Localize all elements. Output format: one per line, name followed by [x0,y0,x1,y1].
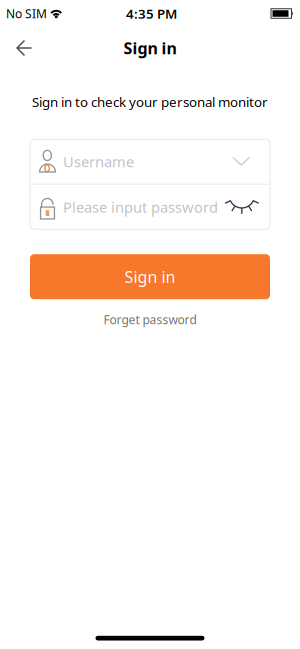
staticText: 4:35 PM [126,5,177,22]
button[interactable]: Show password [228,200,255,214]
button[interactable]: Sign in [30,254,270,299]
staticText: Sign in [124,266,175,287]
staticText: Please input password [63,197,218,217]
staticText: Sign in to check your personal monitor [32,93,268,111]
staticText: Username [63,152,134,171]
staticText: No SIM [6,5,47,21]
button[interactable]: Username [30,139,270,184]
button[interactable]: Password [30,185,270,229]
button[interactable]: Back [0,27,32,69]
staticText: Sign in [123,37,176,59]
button[interactable]: Forget password [103,312,196,328]
staticText: Forget password [103,312,196,328]
